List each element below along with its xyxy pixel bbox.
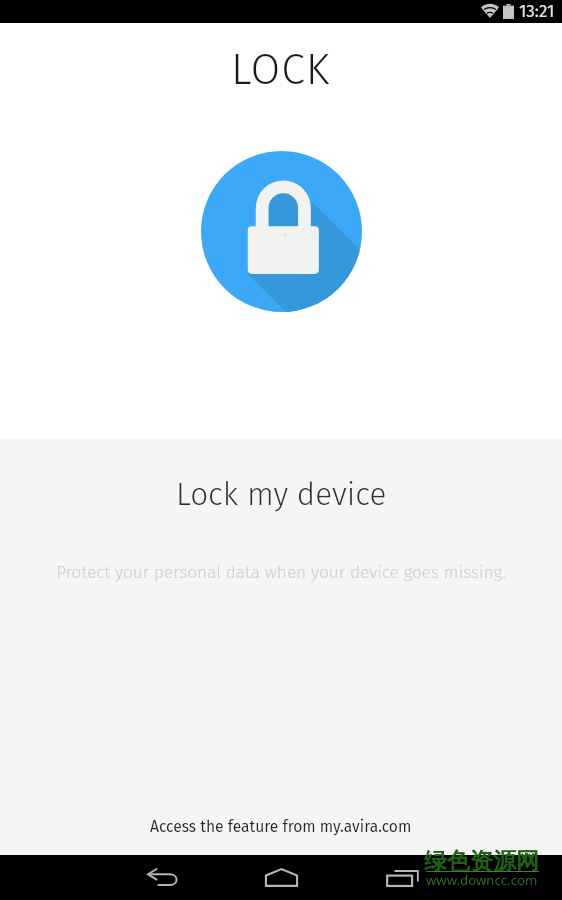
other: Battery bbox=[503, 4, 514, 19]
staticText: 13:21 bbox=[519, 1, 555, 21]
staticText: Protect your personal data when your dev… bbox=[56, 562, 506, 583]
button[interactable]: Recent apps bbox=[372, 855, 432, 900]
staticText: 绿色资源网 bbox=[424, 847, 539, 876]
other: Wi-Fi bbox=[481, 4, 499, 18]
staticText: Lock my device bbox=[176, 476, 387, 514]
staticText: www.downcc.com bbox=[426, 871, 538, 889]
staticText: LOCK bbox=[231, 44, 331, 96]
button[interactable]: Home bbox=[251, 855, 311, 900]
staticText: Access the feature from my.avira.com bbox=[150, 817, 412, 836]
button[interactable]: Back bbox=[133, 855, 193, 900]
button[interactable]: Access the feature from my.avira.com bbox=[136, 811, 426, 842]
button[interactable]: Lock my device bbox=[201, 151, 362, 312]
